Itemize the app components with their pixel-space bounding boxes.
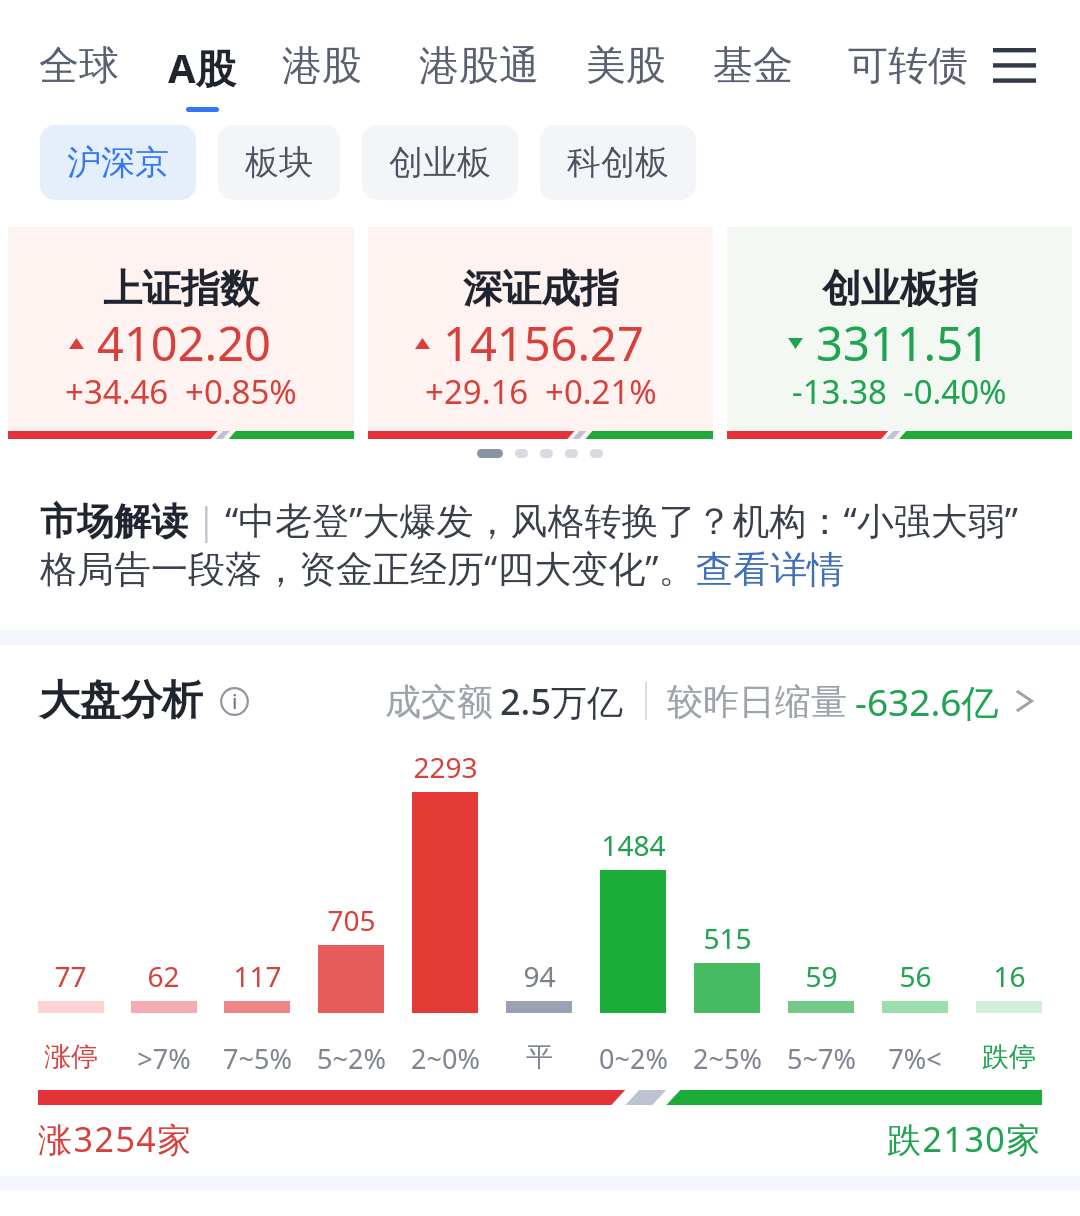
button[interactable]: Info	[220, 687, 249, 716]
staticText: 港股通	[419, 40, 539, 90]
button[interactable]: 上证指数	[8, 227, 354, 439]
staticText: >7%	[137, 1040, 191, 1077]
staticText: “中老登”大爆发，风格转换了？机构：“小强大弱”	[225, 494, 1019, 545]
staticText: 1484	[601, 826, 666, 864]
staticText: 科创板	[567, 141, 669, 184]
staticText: 62	[147, 957, 180, 995]
staticText: 59	[805, 957, 838, 995]
staticText: 2~5%	[693, 1040, 762, 1077]
staticText: 基金	[713, 40, 793, 90]
staticText: 5~2%	[317, 1040, 386, 1077]
staticText: 7%<	[888, 1040, 942, 1077]
staticText: 4102.20	[97, 311, 271, 375]
staticText: 0~2%	[599, 1040, 668, 1077]
staticText: ｜	[188, 498, 225, 545]
staticText: 7~5%	[223, 1040, 292, 1077]
staticText: +0.85%	[185, 369, 297, 414]
staticText: -13.38	[792, 369, 887, 414]
staticText: 56	[899, 957, 932, 995]
staticText: 涨停	[44, 1040, 98, 1074]
staticText: 平	[526, 1040, 553, 1074]
staticText: 3311.51	[816, 311, 990, 375]
staticText: 较昨日缩量	[667, 679, 847, 724]
staticText: +34.46	[65, 369, 169, 414]
staticText: 美股	[586, 40, 666, 90]
button[interactable]: 港股通	[413, 0, 545, 112]
staticText: 14156.27	[443, 311, 644, 375]
staticText: 77	[54, 957, 87, 995]
staticText: +0.21%	[545, 369, 657, 414]
staticText: 2.5万亿	[500, 677, 623, 726]
staticText: 94	[523, 957, 556, 995]
staticText: 上证指数	[103, 264, 259, 313]
staticText: 2~0%	[411, 1040, 480, 1077]
button[interactable]: 创业板	[362, 125, 518, 200]
button[interactable]: 港股	[276, 0, 368, 112]
button[interactable]: 沪深京	[40, 125, 196, 200]
staticText: 全球	[39, 40, 119, 90]
staticText: 705	[327, 901, 376, 939]
staticText: -0.40%	[903, 369, 1007, 414]
staticText: 深证成指	[463, 264, 619, 313]
button[interactable]: 深证成指	[368, 227, 713, 439]
staticText: 港股	[282, 40, 362, 90]
button[interactable]: Menu	[981, 0, 1047, 112]
staticText: 板块	[245, 141, 313, 184]
staticText: 5~7%	[787, 1040, 856, 1077]
button[interactable]: 科创板	[540, 125, 696, 200]
staticText: -632.6亿	[855, 676, 999, 727]
button[interactable]: 创业板指	[727, 227, 1072, 439]
button[interactable]: 美股	[580, 0, 672, 112]
staticText: 跌停	[982, 1040, 1036, 1074]
staticText: 大盘分析	[39, 675, 203, 727]
button[interactable]: A股	[156, 0, 248, 112]
staticText: 117	[233, 957, 282, 995]
button[interactable]: 板块	[218, 125, 340, 200]
staticText: 创业板	[389, 141, 491, 184]
button[interactable]: 可转债	[840, 0, 976, 112]
staticText: 成交额	[385, 679, 493, 724]
staticText: 格局告一段落，资金正经历“四大变化”。	[40, 542, 696, 593]
button[interactable]: 全球	[33, 0, 125, 112]
button[interactable]: 基金	[707, 0, 799, 112]
staticText: 16	[993, 957, 1026, 995]
staticText: 沪深京	[67, 141, 169, 184]
staticText: 涨3254家	[38, 1116, 193, 1162]
staticText: 2293	[413, 748, 478, 786]
staticText: A股	[168, 40, 236, 95]
staticText: +29.16	[425, 369, 529, 414]
staticText: 跌2130家	[887, 1116, 1042, 1162]
staticText: 可转债	[848, 40, 968, 90]
staticText: 515	[703, 919, 752, 957]
staticText: 创业板指	[822, 264, 978, 313]
staticText: i	[232, 688, 238, 715]
button[interactable]: 查看详情	[696, 546, 844, 593]
staticText: 市场解读	[40, 498, 188, 545]
